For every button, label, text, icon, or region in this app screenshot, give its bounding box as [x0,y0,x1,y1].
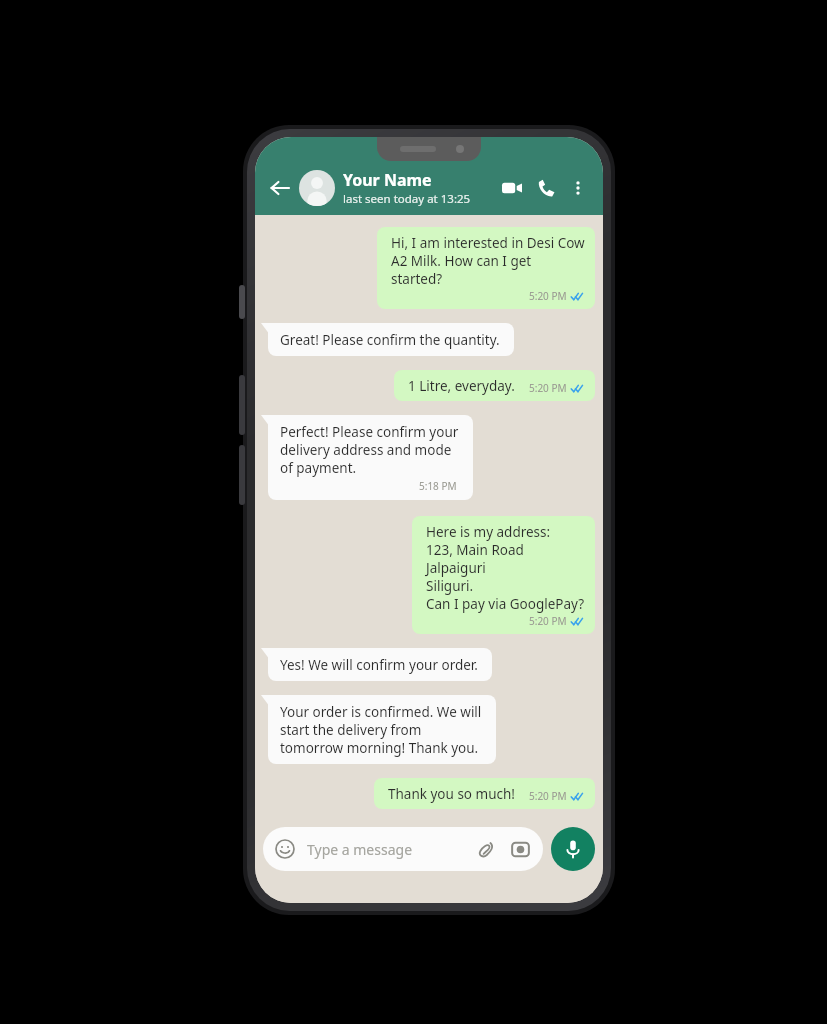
staticText: Here is my address: [426,523,551,541]
button[interactable]: Attach [473,836,499,862]
button[interactable]: Voice call [529,171,563,205]
staticText: Type a message [307,840,473,859]
staticText: last seen today at 13:25 [343,191,471,207]
staticText: Perfect! Please confirm your [280,423,459,441]
staticText: A2 Milk. How can I get [391,252,532,270]
staticText: Your order is confirmed. We will [280,703,482,721]
button[interactable]: Voice message [551,827,595,871]
staticText: Thank you so much! [388,785,515,803]
staticText: started? [391,270,443,288]
staticText: tomorrow morning! Thank you. [280,739,479,757]
staticText: 5:18 PM [419,479,457,493]
button[interactable]: Back [263,171,297,205]
button[interactable]: Profile photo [299,170,335,206]
button[interactable]: Yes! We will confirm your order. [268,648,492,681]
staticText: of payment. [280,459,357,477]
button[interactable]: Your order is confirmed. We will [268,695,496,764]
button[interactable]: Emoji [273,837,297,861]
staticText: 5:20 PM [529,381,567,395]
staticText: Yes! We will confirm your order. [280,656,478,674]
button[interactable]: Hi, I am interested in Desi Cow [377,227,595,309]
staticText: delivery address and mode [280,441,452,459]
button[interactable]: Here is my address: [412,516,595,634]
staticText: 5:20 PM [529,614,567,628]
staticText: Can I pay via GooglePay? [426,595,585,613]
staticText: 123, Main Road [426,541,524,559]
button[interactable]: Great! Please confirm the quantity. [268,323,514,356]
staticText: Hi, I am interested in Desi Cow [391,234,585,252]
button[interactable]: Emoji [263,827,543,871]
button[interactable]: Camera [507,836,533,862]
staticText: Great! Please confirm the quantity. [280,331,500,349]
button[interactable]: Thank you so much! [374,778,595,809]
staticText: Jalpaiguri [426,559,486,577]
button[interactable]: Video call [495,171,529,205]
button[interactable]: Perfect! Please confirm your [268,415,473,500]
staticText: 1 Litre, everyday. [408,377,515,395]
button[interactable]: More options [563,173,593,203]
staticText: Siliguri. [426,577,474,595]
button[interactable]: 1 Litre, everyday. [394,370,595,401]
staticText: start the delivery from [280,721,422,739]
staticText: Your Name [343,169,432,191]
staticText: 5:20 PM [529,789,567,803]
staticText: 5:20 PM [529,289,567,303]
